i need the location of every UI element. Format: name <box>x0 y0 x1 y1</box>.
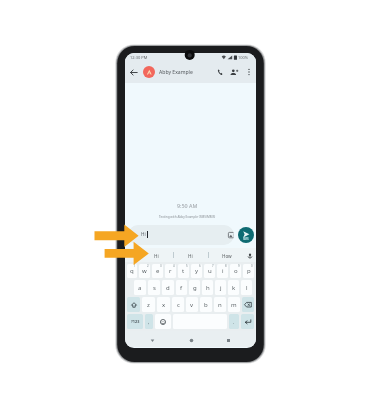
staticText: t <box>182 267 185 275</box>
staticText: b <box>204 301 208 309</box>
staticText: s <box>153 284 156 292</box>
button[interactable]: o <box>230 264 241 278</box>
staticText: w <box>142 267 147 275</box>
staticText: 5 <box>186 264 188 268</box>
button[interactable]: x <box>157 297 170 312</box>
staticText: 6 <box>199 264 201 268</box>
staticText: 8 <box>225 264 227 268</box>
button[interactable]: w <box>139 264 150 278</box>
staticText: How <box>222 253 232 259</box>
staticText: SMS <box>243 237 249 241</box>
button[interactable]: c <box>172 297 184 312</box>
button[interactable]: Call <box>214 66 226 78</box>
button[interactable]: y <box>191 264 202 278</box>
button[interactable]: Period <box>229 314 239 329</box>
button[interactable]: f <box>176 280 187 295</box>
staticText: 9:50 AM <box>177 202 198 209</box>
button[interactable]: Symbols <box>127 314 143 329</box>
staticText: l <box>246 284 248 292</box>
button[interactable]: u <box>204 264 215 278</box>
staticText: u <box>208 267 212 275</box>
staticText: 4 <box>173 264 175 268</box>
staticText: Texting with Abby Example (SMS/MMS) <box>159 215 216 219</box>
staticText: j <box>220 284 222 292</box>
staticText: , <box>148 319 150 325</box>
button[interactable]: t <box>178 264 189 278</box>
button[interactable]: Voice input <box>243 248 256 263</box>
staticText: a <box>138 284 142 292</box>
button[interactable]: Home <box>184 333 198 347</box>
staticText: 7 <box>212 264 214 268</box>
button[interactable]: Hi <box>139 248 173 263</box>
button[interactable]: d <box>162 280 174 295</box>
staticText: i <box>222 267 224 275</box>
staticText: x <box>162 301 166 309</box>
staticText: p <box>247 267 251 275</box>
staticText: Hi <box>188 253 193 259</box>
staticText: k <box>232 284 236 292</box>
button[interactable]: Hi <box>128 225 234 245</box>
staticText: . <box>233 319 235 325</box>
staticText: g <box>193 284 197 292</box>
button[interactable]: s <box>148 280 160 295</box>
button[interactable]: l <box>241 280 252 295</box>
staticText: Hi <box>141 231 146 237</box>
button[interactable]: n <box>214 297 226 312</box>
staticText: 0 <box>251 264 253 268</box>
button[interactable]: Hi <box>173 248 207 263</box>
button[interactable]: e <box>152 264 163 278</box>
button[interactable]: Backspace <box>242 297 254 312</box>
staticText: z <box>147 301 150 309</box>
button[interactable]: Back <box>127 66 139 78</box>
button[interactable]: r <box>165 264 176 278</box>
button[interactable]: Send SMS <box>238 227 254 243</box>
button[interactable]: j <box>215 280 226 295</box>
button[interactable]: q <box>127 264 137 278</box>
button[interactable]: h <box>202 280 213 295</box>
button[interactable]: a <box>134 280 146 295</box>
staticText: Hi <box>154 253 159 259</box>
button[interactable]: Enter <box>241 314 254 329</box>
staticText: 9 <box>238 264 240 268</box>
button[interactable]: Emoji <box>155 314 171 329</box>
staticText: f <box>180 284 183 292</box>
button[interactable]: v <box>186 297 198 312</box>
staticText: 3 <box>160 264 162 268</box>
staticText: o <box>234 267 238 275</box>
staticText: 2 <box>147 264 149 268</box>
staticText: v <box>190 301 194 309</box>
staticText: 100% <box>238 55 249 60</box>
button[interactable]: Shift <box>127 297 140 312</box>
button[interactable]: Add contact <box>228 66 240 78</box>
staticText: q <box>130 267 134 275</box>
button[interactable]: Comma <box>145 314 153 329</box>
button[interactable]: m <box>228 297 240 312</box>
button[interactable]: k <box>228 280 239 295</box>
button[interactable]: Back <box>145 333 159 347</box>
staticText: c <box>177 301 180 309</box>
staticText: n <box>218 301 222 309</box>
button[interactable]: i <box>217 264 228 278</box>
staticText: m <box>231 301 237 309</box>
button[interactable]: z <box>142 297 155 312</box>
button[interactable]: b <box>200 297 212 312</box>
staticText: d <box>166 284 170 292</box>
staticText: 1 <box>134 264 136 268</box>
staticText: e <box>156 267 160 275</box>
staticText: y <box>195 267 199 275</box>
staticText: r <box>169 267 172 275</box>
staticText: ?123 <box>131 319 140 324</box>
button[interactable]: More options <box>243 66 255 78</box>
staticText: 12:30 PM <box>130 55 148 60</box>
button[interactable]: Recents <box>221 333 235 347</box>
button[interactable]: How <box>208 248 245 263</box>
staticText: h <box>206 284 210 292</box>
button[interactable]: p <box>243 264 254 278</box>
staticText: Abby Example <box>159 69 193 76</box>
button[interactable]: g <box>189 280 200 295</box>
